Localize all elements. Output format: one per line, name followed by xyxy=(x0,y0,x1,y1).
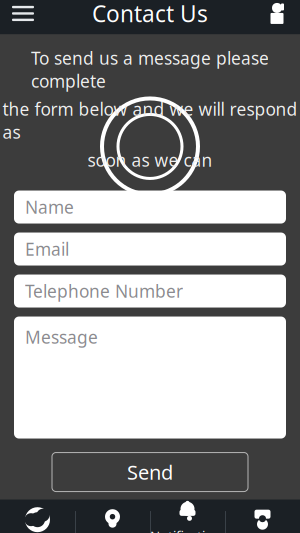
button[interactable]: Find us xyxy=(75,499,150,533)
staticText: the form below and we will respond as xyxy=(2,97,297,143)
button[interactable]: Menu xyxy=(0,0,46,34)
staticText: Name xyxy=(25,195,74,218)
staticText: Telephone Number xyxy=(25,279,183,302)
staticText: To send us a message please complete xyxy=(31,46,269,92)
staticText: soon as we can xyxy=(87,148,212,171)
staticText: Contact Us xyxy=(92,0,208,28)
staticText: Send xyxy=(127,459,173,485)
button[interactable]: Promotions xyxy=(225,499,300,533)
staticText: Message xyxy=(25,325,98,348)
button[interactable]: Notifications xyxy=(150,499,225,533)
button[interactable]: Home xyxy=(254,0,300,34)
button[interactable]: Send xyxy=(52,452,248,491)
staticText: Notifications xyxy=(150,527,225,533)
button[interactable]: Call us xyxy=(0,499,75,533)
staticText: Email xyxy=(25,237,69,260)
